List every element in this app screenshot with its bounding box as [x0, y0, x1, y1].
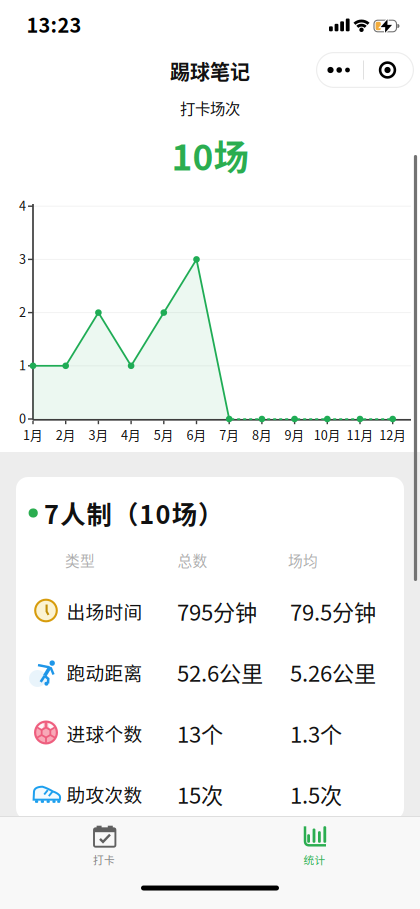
staticText: 跑动距离 — [66, 658, 142, 685]
staticText: 5.26公里 — [290, 656, 376, 688]
staticText: 7人制（10场） — [44, 495, 223, 531]
staticText: 795分钟 — [177, 595, 257, 627]
staticText: 10场 — [171, 129, 248, 181]
staticText: 踢球笔记 — [170, 56, 250, 85]
staticText: 1月 — [23, 425, 43, 444]
staticText: 2 — [19, 302, 26, 321]
staticText: 类型 — [65, 549, 95, 571]
staticText: 1.3个 — [290, 717, 342, 749]
staticText: 1.5次 — [290, 778, 342, 810]
staticText: 13:23 — [26, 9, 81, 38]
staticText: 统计 — [303, 852, 325, 867]
staticText: 3月 — [88, 425, 108, 444]
staticText: 11月 — [346, 425, 373, 444]
staticText: 打卡场次 — [180, 96, 240, 119]
staticText: 8月 — [252, 425, 272, 444]
staticText: 10月 — [314, 425, 341, 444]
staticText: 场均 — [288, 549, 318, 571]
staticText: 79.5分钟 — [290, 595, 376, 627]
staticText: 9月 — [285, 425, 305, 444]
staticText: 52.6公里 — [177, 656, 263, 688]
staticText: 6月 — [186, 425, 206, 444]
staticText: 进球个数 — [66, 719, 142, 746]
staticText: 15次 — [177, 778, 223, 810]
staticText: 12月 — [379, 425, 406, 444]
staticText: 0 — [19, 409, 26, 427]
staticText: 5月 — [154, 425, 174, 444]
staticText: 3 — [19, 249, 26, 267]
staticText: 出场时间 — [66, 597, 142, 624]
staticText: 打卡 — [93, 852, 115, 867]
staticText: 7月 — [219, 425, 239, 444]
staticText: 4月 — [121, 425, 141, 444]
staticText: 总数 — [177, 549, 207, 571]
staticText: 13个 — [177, 717, 223, 749]
staticText: 2月 — [56, 425, 76, 444]
staticText: 助攻次数 — [66, 780, 142, 807]
staticText: 1 — [19, 356, 26, 374]
staticText: 4 — [19, 196, 26, 214]
